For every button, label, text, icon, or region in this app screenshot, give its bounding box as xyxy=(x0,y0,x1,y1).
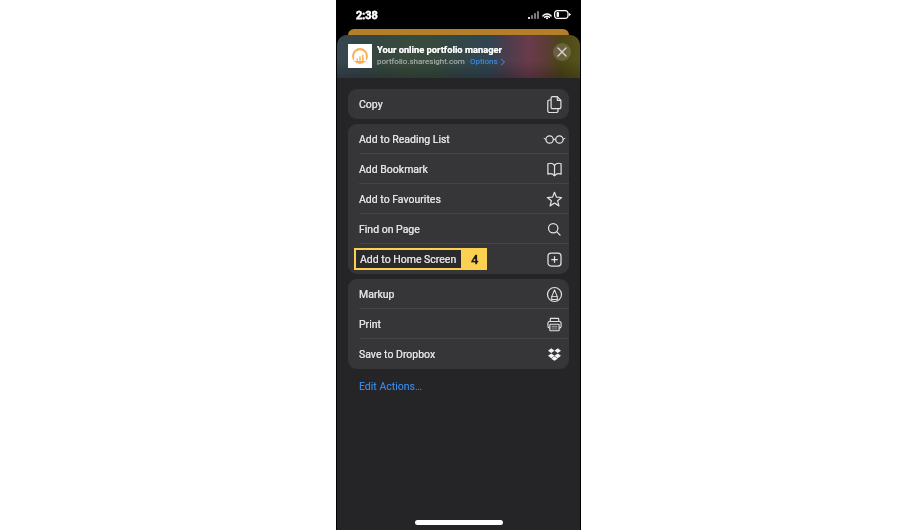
staticText: 2:38 xyxy=(356,9,378,22)
staticText: Markup xyxy=(359,288,395,300)
button[interactable]: Save to Dropbox xyxy=(348,339,569,369)
button[interactable]: Copy xyxy=(348,89,569,119)
staticText: Add to Favourites xyxy=(359,193,441,205)
staticText: Save to Dropbox xyxy=(359,348,436,360)
staticText: Copy xyxy=(359,98,383,110)
button[interactable]: Edit Actions… xyxy=(356,377,425,395)
staticText: portfolio.sharesight.com xyxy=(377,57,465,66)
staticText: 4 xyxy=(471,252,479,267)
staticText: Print xyxy=(359,318,381,330)
staticText: Find on Page xyxy=(359,223,420,235)
button[interactable]: Add to Favourites xyxy=(348,184,569,214)
button[interactable]: Add Bookmark xyxy=(348,154,569,184)
staticText: Edit Actions… xyxy=(359,380,422,392)
staticText: Add Bookmark xyxy=(359,163,428,175)
staticText: Options xyxy=(470,57,498,66)
staticText: Your online portfolio manager xyxy=(377,44,502,55)
button[interactable]: Markup xyxy=(348,279,569,309)
button[interactable]: Close xyxy=(553,43,571,61)
button[interactable]: Find on Page xyxy=(348,214,569,244)
button[interactable]: Options xyxy=(470,57,505,66)
button[interactable]: Print xyxy=(348,309,569,339)
button[interactable]: Add to Home Screen xyxy=(348,244,569,274)
staticText: Add to Reading List xyxy=(359,133,450,145)
staticText: Add to Home Screen xyxy=(360,253,457,265)
button[interactable]: Add to Reading List xyxy=(348,124,569,154)
